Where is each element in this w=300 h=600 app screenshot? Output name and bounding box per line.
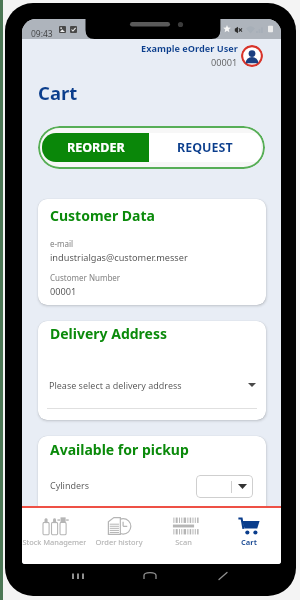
staticText: REQUEST bbox=[177, 139, 233, 156]
staticText: Delivery Address bbox=[50, 324, 167, 343]
staticText: REORDER bbox=[67, 139, 125, 156]
staticText: 09:43 bbox=[31, 28, 53, 40]
button[interactable]: Select quantity bbox=[196, 475, 253, 498]
button[interactable]: REORDER bbox=[42, 133, 149, 162]
button[interactable]: Account bbox=[241, 45, 263, 67]
button[interactable]: Please select a delivery address bbox=[49, 375, 256, 395]
staticText: Order history bbox=[95, 537, 143, 547]
button[interactable]: Order history bbox=[86, 508, 151, 564]
staticText: Cart bbox=[38, 80, 78, 104]
staticText: Cylinders bbox=[50, 479, 90, 491]
staticText: Customer Number bbox=[50, 272, 121, 283]
staticText: Please select a delivery address bbox=[49, 379, 248, 391]
staticText: e-mail bbox=[50, 238, 74, 249]
staticText: Scan bbox=[175, 537, 192, 547]
staticText: Example eOrder User bbox=[141, 42, 238, 55]
button[interactable]: Cart bbox=[216, 508, 281, 564]
staticText: Stock Management bbox=[22, 537, 86, 547]
button[interactable]: Scan bbox=[151, 508, 216, 564]
staticText: Customer Data bbox=[50, 206, 155, 225]
staticText: industrialgas@customer.messer bbox=[50, 251, 188, 264]
button[interactable]: REQUEST bbox=[149, 133, 261, 162]
staticText: 00001 bbox=[50, 285, 77, 298]
staticText: 00001 bbox=[211, 56, 238, 68]
staticText: Available for pickup bbox=[50, 440, 189, 459]
button[interactable]: Stock Management bbox=[22, 508, 86, 564]
staticText: Cart bbox=[241, 537, 257, 547]
